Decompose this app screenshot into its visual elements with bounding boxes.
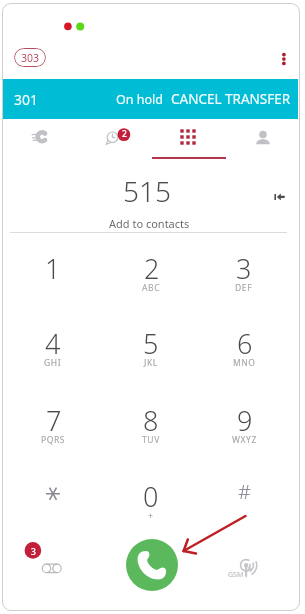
staticText: 2 xyxy=(122,128,127,140)
staticText: 1 xyxy=(45,250,61,287)
button[interactable]: 0 xyxy=(104,470,198,532)
staticText: JKL xyxy=(144,357,158,369)
staticText: 3 xyxy=(236,250,252,287)
staticText: + xyxy=(148,510,154,522)
button[interactable]: 6 xyxy=(197,317,291,379)
staticText: 8 xyxy=(143,402,159,439)
staticText: 6 xyxy=(237,325,253,362)
button[interactable]: 8 xyxy=(104,394,198,456)
button[interactable]: 1 xyxy=(6,242,100,304)
button[interactable]: 303 xyxy=(14,48,46,67)
button[interactable]: 9 xyxy=(197,394,291,456)
staticText: TUV xyxy=(142,434,160,446)
button[interactable]: 2 xyxy=(104,242,198,304)
button[interactable]: Dialpad xyxy=(150,118,225,156)
staticText: 4 xyxy=(45,325,61,362)
button[interactable]: 5 xyxy=(104,317,198,379)
button[interactable]: More options xyxy=(271,42,297,68)
button[interactable]: 3 xyxy=(197,242,291,304)
staticText: DEF xyxy=(235,282,253,294)
staticText: MNO xyxy=(233,357,256,369)
staticText: 0 xyxy=(143,478,159,515)
button[interactable]: Call log xyxy=(76,118,150,156)
button[interactable]: 7 xyxy=(6,394,100,456)
staticText: Add to contacts xyxy=(109,216,190,231)
button[interactable]: Call xyxy=(126,539,178,591)
button[interactable]: Contacts xyxy=(225,118,300,156)
staticText: CANCEL TRANSFER xyxy=(171,90,291,108)
staticText: ABC xyxy=(142,282,161,294)
staticText: 9 xyxy=(237,402,253,439)
staticText: 2 xyxy=(144,250,160,287)
button[interactable]: CANCEL TRANSFER xyxy=(171,90,291,108)
button[interactable]: Add to contacts xyxy=(109,216,190,231)
staticText: PQRS xyxy=(41,434,66,446)
button[interactable] xyxy=(6,470,100,532)
staticText: WXYZ xyxy=(232,434,257,446)
staticText: On hold xyxy=(116,91,163,108)
staticText: GSM xyxy=(228,570,244,580)
staticText: 303 xyxy=(21,51,40,65)
staticText: 7 xyxy=(46,402,62,439)
staticText: 515 xyxy=(123,172,171,206)
button[interactable]: Voicemail xyxy=(22,538,68,584)
button[interactable]: Recent calls xyxy=(2,118,76,156)
button[interactable]: Backspace xyxy=(268,184,294,210)
button[interactable]: # xyxy=(197,470,291,532)
button[interactable]: GSM xyxy=(224,544,268,588)
staticText: # xyxy=(238,478,251,505)
button[interactable]: 4 xyxy=(6,317,100,379)
staticText: 5 xyxy=(143,325,159,362)
staticText: 3 xyxy=(31,546,36,558)
staticText: GHI xyxy=(44,357,62,369)
staticText: 301 xyxy=(14,90,39,109)
